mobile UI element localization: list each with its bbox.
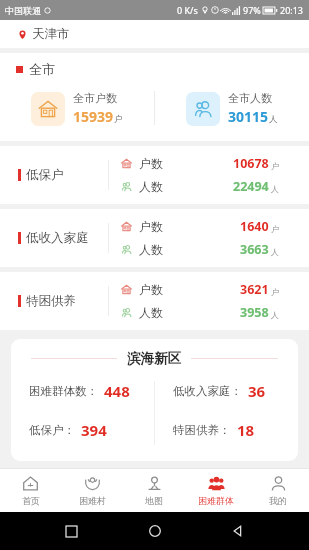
- button[interactable]: 困难群体: [185, 469, 247, 512]
- staticText: 人: [271, 310, 279, 320]
- staticText: 低收入家庭：: [173, 384, 242, 398]
- staticText: 特困供养: [26, 293, 76, 309]
- staticText: 户数: [139, 282, 163, 297]
- staticText: 首页: [22, 495, 40, 506]
- staticText: 户: [271, 287, 279, 297]
- staticText: 困难村: [79, 495, 106, 506]
- staticText: 低收入家庭: [26, 230, 89, 246]
- staticText: 低保户: [26, 167, 64, 183]
- staticText: 人数: [139, 305, 163, 320]
- button[interactable]: Back: [225, 518, 251, 544]
- staticText: 低保户：: [29, 423, 75, 437]
- button[interactable]: 滨海新区: [11, 339, 298, 461]
- staticText: 3663: [240, 241, 269, 258]
- staticText: 特困供养：: [173, 423, 231, 437]
- staticText: 人数: [139, 179, 163, 194]
- button[interactable]: 地图: [123, 469, 185, 512]
- staticText: 全市人数: [228, 91, 272, 105]
- button[interactable]: 首页: [0, 469, 61, 512]
- staticText: 困难群体: [198, 495, 234, 506]
- button[interactable]: 天津市: [0, 20, 309, 48]
- staticText: 448: [104, 381, 130, 401]
- staticText: 22494: [233, 178, 269, 195]
- staticText: 18: [237, 420, 255, 440]
- staticText: 15939: [73, 107, 114, 126]
- staticText: 人: [271, 247, 279, 257]
- staticText: 天津市: [32, 26, 70, 42]
- staticText: 我的: [269, 495, 287, 506]
- button[interactable]: 低保户: [0, 146, 309, 204]
- staticText: 394: [81, 420, 107, 440]
- staticText: 30115: [228, 107, 269, 126]
- staticText: 户: [271, 224, 279, 234]
- staticText: 人: [269, 114, 278, 125]
- staticText: 滨海新区: [127, 350, 181, 367]
- staticText: 全市: [29, 61, 55, 77]
- staticText: 户数: [139, 156, 163, 171]
- button[interactable]: 全市人数: [155, 84, 309, 132]
- staticText: 全市户数: [73, 91, 117, 105]
- staticText: 户数: [139, 219, 163, 234]
- button[interactable]: 特困供养: [0, 272, 309, 330]
- staticText: 10678: [233, 155, 269, 172]
- staticText: 中国联通: [5, 5, 41, 16]
- staticText: 地图: [145, 495, 163, 506]
- staticText: 人数: [139, 242, 163, 257]
- button[interactable]: 困难村: [61, 469, 123, 512]
- staticText: 0 K/s: [177, 4, 198, 16]
- staticText: 36: [248, 381, 266, 401]
- staticText: 3958: [240, 304, 269, 321]
- staticText: 1640: [240, 218, 269, 235]
- staticText: 97%: [243, 4, 261, 16]
- staticText: 户: [114, 114, 123, 125]
- button[interactable]: Recents: [58, 518, 84, 544]
- staticText: 户: [271, 161, 279, 171]
- button[interactable]: 低收入家庭: [0, 209, 309, 267]
- staticText: 20:13: [280, 4, 304, 16]
- button[interactable]: 全市户数: [0, 84, 154, 132]
- staticText: 3621: [240, 281, 269, 298]
- button[interactable]: Home: [142, 518, 168, 544]
- button[interactable]: 我的: [247, 469, 309, 512]
- staticText: 人: [271, 184, 279, 194]
- staticText: 困难群体数：: [29, 384, 98, 398]
